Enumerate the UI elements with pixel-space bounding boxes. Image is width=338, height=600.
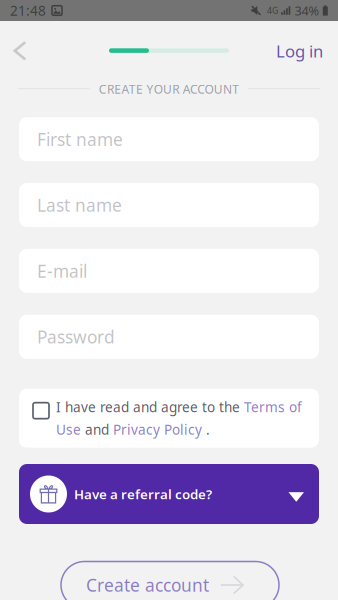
staticText: Use xyxy=(56,420,81,439)
staticText: First name xyxy=(37,127,123,151)
button[interactable]: First name xyxy=(19,117,319,161)
staticText: Last name xyxy=(37,193,122,217)
button[interactable]: Create account xyxy=(61,561,279,600)
staticText: Password xyxy=(37,325,115,349)
staticText: E-mail xyxy=(37,259,87,283)
button[interactable]: Back xyxy=(0,29,42,73)
staticText: Log in xyxy=(276,40,323,62)
staticText: 34% xyxy=(295,2,320,19)
staticText: Terms of xyxy=(244,398,302,416)
button[interactable]: Password xyxy=(19,315,319,359)
staticText: Have a referral code? xyxy=(74,485,212,503)
button[interactable]: Agree to terms xyxy=(33,403,49,419)
button[interactable]: Terms of xyxy=(244,398,302,416)
staticText: 21:48 xyxy=(10,1,46,20)
staticText: Privacy Policy xyxy=(113,420,202,439)
staticText: . xyxy=(202,420,210,439)
staticText: I have read and agree to the xyxy=(56,398,244,416)
staticText: and xyxy=(81,420,113,439)
staticText: CREATE YOUR ACCOUNT xyxy=(99,81,239,97)
staticText: Create account xyxy=(86,573,209,597)
button[interactable]: Log in xyxy=(263,31,335,71)
button[interactable]: Privacy Policy xyxy=(113,420,202,439)
button[interactable]: Have a referral code? xyxy=(19,464,319,524)
button[interactable]: Last name xyxy=(19,183,319,227)
button[interactable]: E-mail xyxy=(19,249,319,293)
button[interactable]: Use xyxy=(56,420,81,439)
staticText: 4G xyxy=(267,5,278,16)
